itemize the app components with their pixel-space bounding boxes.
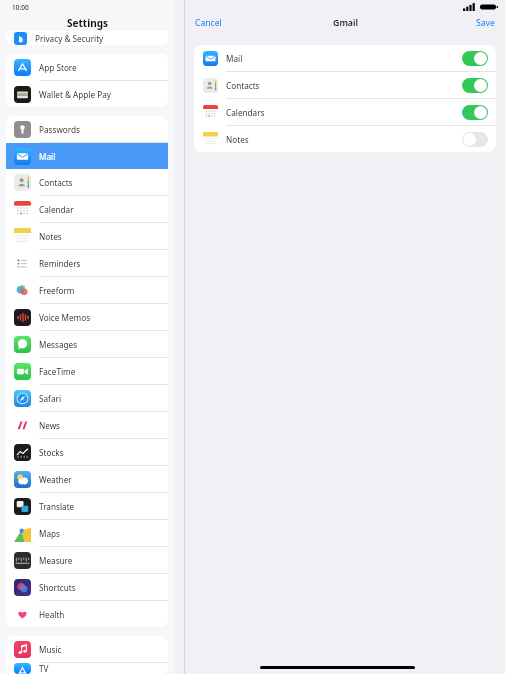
staticText: Reminders xyxy=(39,258,81,269)
button[interactable]: Mail xyxy=(6,143,168,169)
staticText: Settings xyxy=(67,16,108,30)
staticText: Calendar xyxy=(39,204,74,215)
staticText: Mail xyxy=(39,151,56,162)
staticText: 10:00 xyxy=(12,3,29,12)
staticText: Notes xyxy=(39,231,62,242)
button[interactable]: Voice Memos xyxy=(6,304,168,330)
staticText: TV xyxy=(39,663,49,674)
staticText: Stocks xyxy=(39,447,64,458)
staticText: Messages xyxy=(39,339,78,350)
button[interactable]: TV xyxy=(6,663,168,674)
staticText: Contacts xyxy=(226,80,260,91)
staticText: Notes xyxy=(226,134,249,145)
staticText: Privacy & Security xyxy=(35,33,104,44)
other: Mail on xyxy=(462,51,488,66)
button[interactable]: Wallet & Apple Pay xyxy=(6,81,168,107)
staticText: Shortcuts xyxy=(39,582,76,593)
button[interactable]: App Store xyxy=(6,54,168,80)
button[interactable]: Safari xyxy=(6,385,168,411)
staticText: Translate xyxy=(39,501,75,512)
staticText: Mail xyxy=(226,53,243,64)
button[interactable]: Save xyxy=(466,15,505,31)
button[interactable]: Passwords xyxy=(6,116,168,142)
staticText: Weather xyxy=(39,474,72,485)
staticText: FaceTime xyxy=(39,366,76,377)
staticText: Voice Memos xyxy=(39,312,91,323)
button[interactable]: Notes xyxy=(194,126,496,152)
button[interactable]: Notes xyxy=(6,223,168,249)
button[interactable]: FaceTime xyxy=(6,358,168,384)
other: Calendars on xyxy=(462,105,488,120)
staticText: Calendars xyxy=(226,107,265,118)
staticText: Gmail xyxy=(333,17,358,29)
button[interactable]: Shortcuts xyxy=(6,574,168,600)
button[interactable]: Contacts xyxy=(194,72,496,98)
staticText: App Store xyxy=(39,62,77,73)
staticText: Freeform xyxy=(39,285,75,296)
button[interactable]: Reminders xyxy=(6,250,168,276)
button[interactable]: Measure xyxy=(6,547,168,573)
staticText: Passwords xyxy=(39,124,80,135)
button[interactable]: Translate xyxy=(6,493,168,519)
button[interactable]: Calendars xyxy=(194,99,496,125)
button[interactable]: Calendar xyxy=(6,196,168,222)
button[interactable]: Messages xyxy=(6,331,168,357)
staticText: Save xyxy=(476,17,495,29)
other: Notes off xyxy=(462,132,488,147)
staticText: Music xyxy=(39,644,62,655)
button[interactable]: Contacts xyxy=(6,169,168,195)
button[interactable]: News xyxy=(6,412,168,438)
staticText: Safari xyxy=(39,393,61,404)
staticText: News xyxy=(39,420,61,431)
staticText: Cancel xyxy=(195,17,222,29)
staticText: Contacts xyxy=(39,177,73,188)
button[interactable]: Mail xyxy=(194,45,496,71)
button[interactable]: Weather xyxy=(6,466,168,492)
button[interactable]: Health xyxy=(6,601,168,627)
staticText: Wallet & Apple Pay xyxy=(39,89,111,100)
button[interactable]: Music xyxy=(6,636,168,662)
button[interactable]: Privacy & Security xyxy=(6,31,168,45)
staticText: Maps xyxy=(39,528,60,539)
button[interactable]: Cancel xyxy=(185,15,232,31)
button[interactable]: Maps xyxy=(6,520,168,546)
other: Contacts on xyxy=(462,78,488,93)
button[interactable]: Stocks xyxy=(6,439,168,465)
staticText: Measure xyxy=(39,555,73,566)
staticText: Health xyxy=(39,609,65,620)
button[interactable]: Freeform xyxy=(6,277,168,303)
